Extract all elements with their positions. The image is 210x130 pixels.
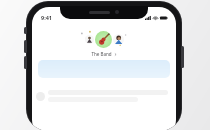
other: Silence switch <box>24 27 27 34</box>
button[interactable] <box>36 90 168 102</box>
button[interactable]: The Band <box>32 26 176 57</box>
other: Volume down <box>24 56 27 69</box>
staticText: 9:41 <box>41 14 52 21</box>
staticText: The Band <box>91 51 112 57</box>
button[interactable] <box>38 60 170 78</box>
other: Volume up <box>24 40 27 53</box>
other: Power <box>181 46 184 68</box>
